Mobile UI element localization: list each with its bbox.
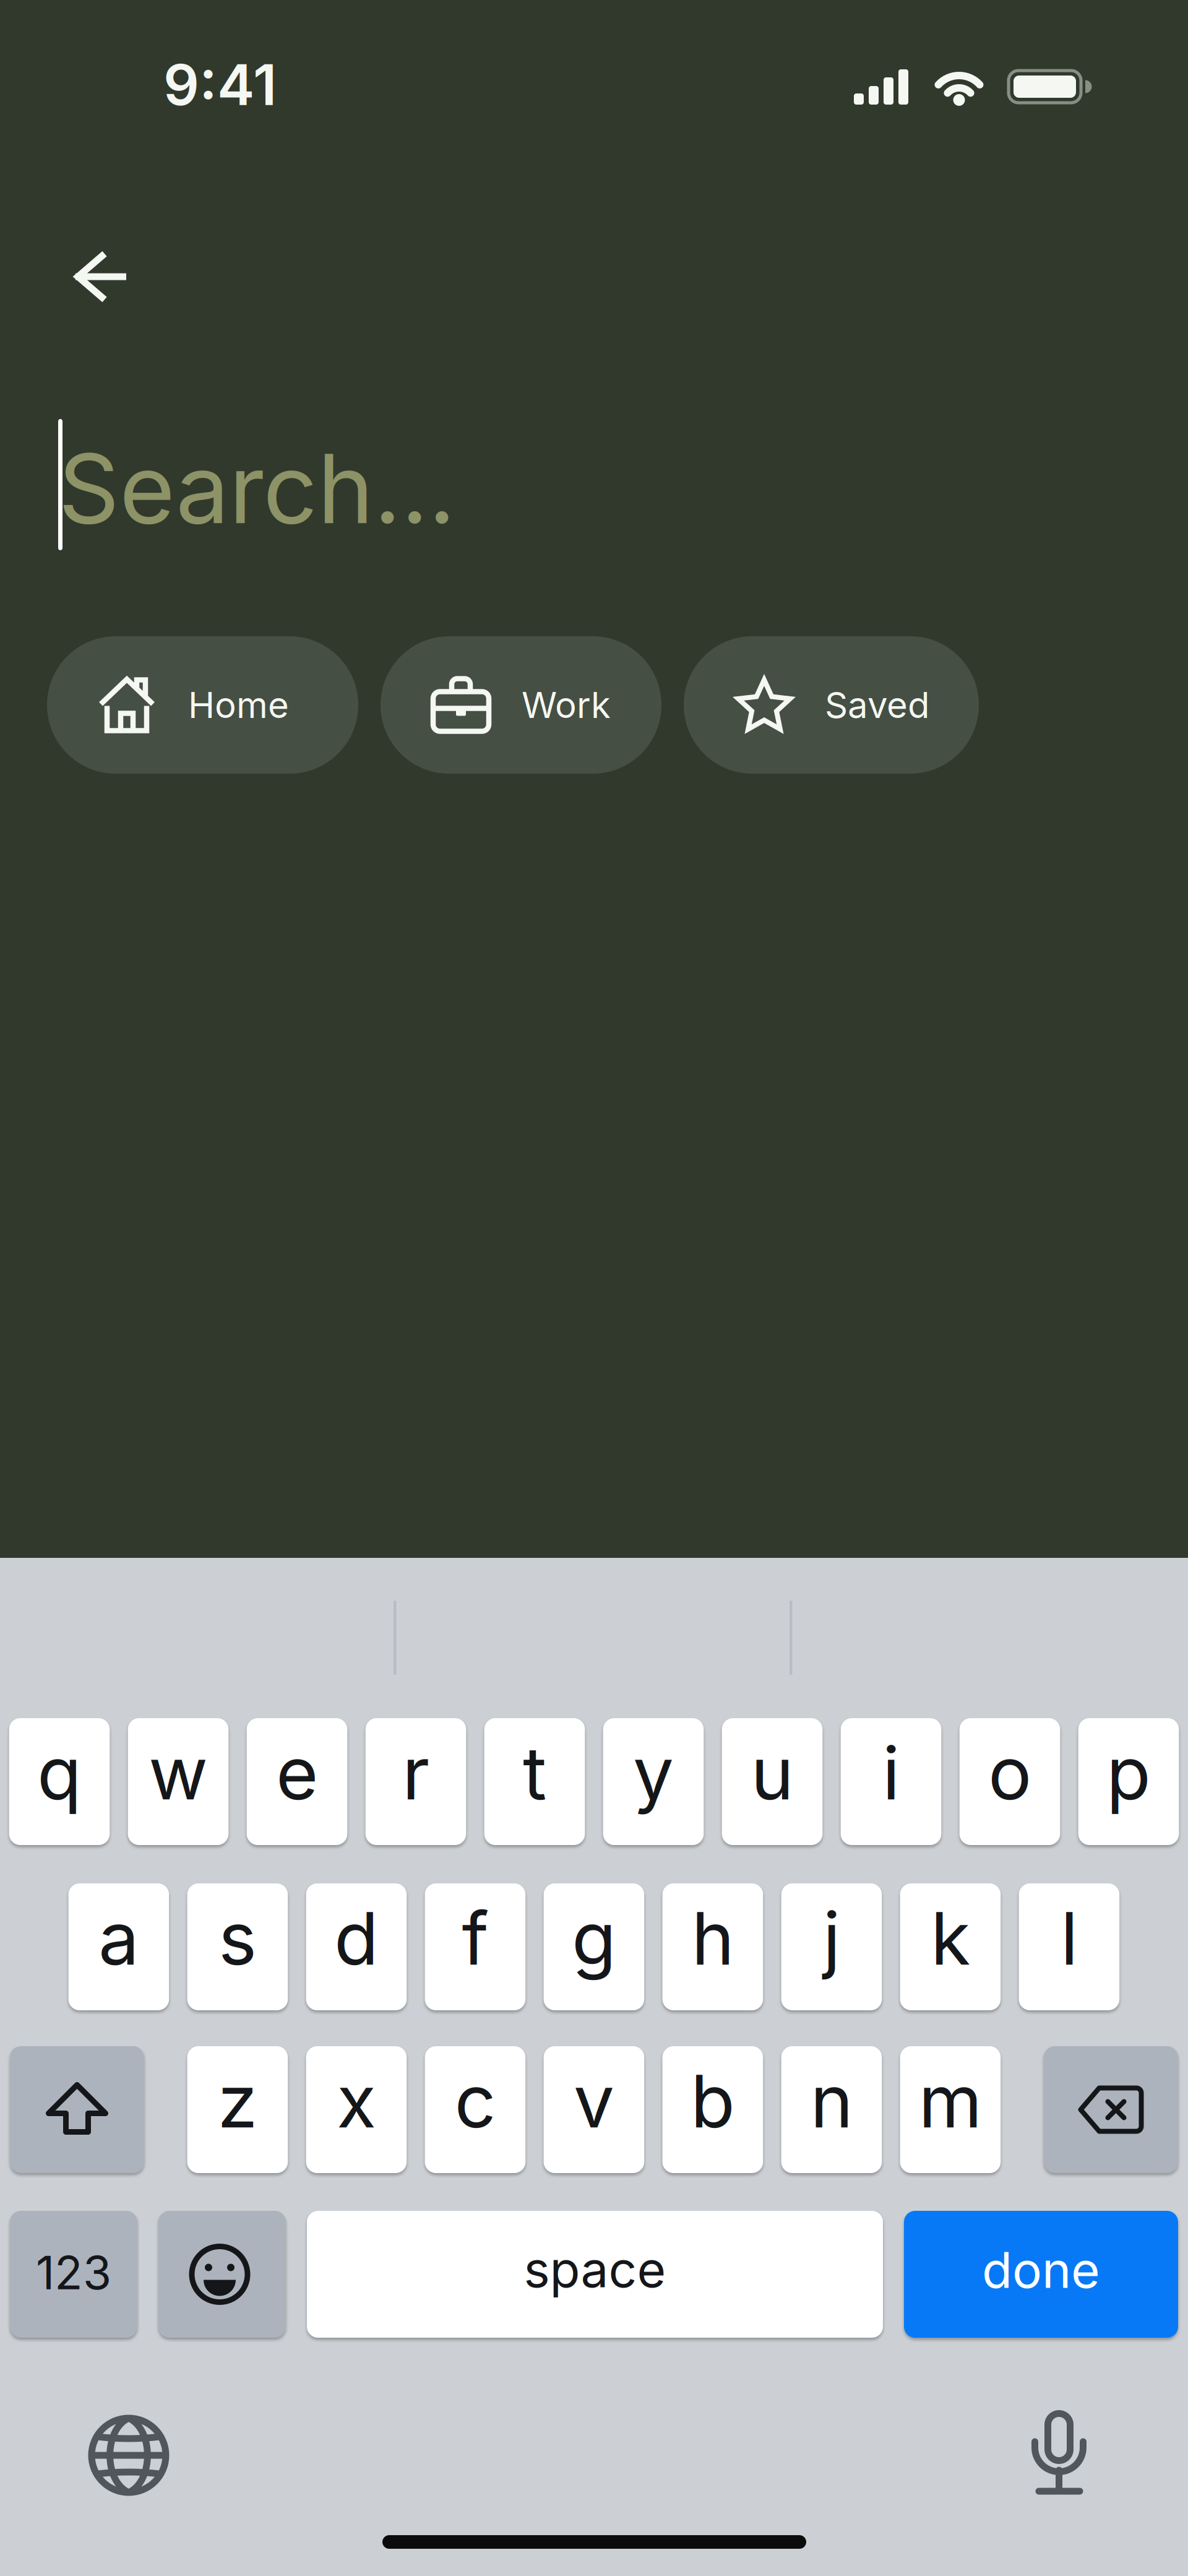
staticText: g xyxy=(572,1894,616,1982)
button[interactable]: e xyxy=(247,1718,347,1845)
button[interactable]: q xyxy=(9,1718,110,1845)
button[interactable]: p xyxy=(1078,1718,1179,1845)
staticText: e xyxy=(276,1729,318,1817)
button[interactable]: v xyxy=(544,2046,644,2173)
staticText: w xyxy=(148,1729,208,1817)
staticText: r xyxy=(402,1729,429,1817)
staticText: 9:41 xyxy=(163,51,277,119)
staticText: h xyxy=(691,1894,734,1982)
button[interactable]: a xyxy=(68,1883,169,2010)
button[interactable]: h xyxy=(662,1883,763,2010)
staticText: t xyxy=(523,1729,546,1817)
button[interactable]: y xyxy=(603,1718,704,1845)
staticText: done xyxy=(982,2240,1100,2300)
button[interactable]: l xyxy=(1019,1883,1119,2010)
button[interactable]: space xyxy=(307,2211,883,2338)
button[interactable]: o xyxy=(959,1718,1060,1845)
button[interactable]: Emoji xyxy=(158,2211,286,2338)
staticText: v xyxy=(574,2057,614,2145)
button[interactable]: c xyxy=(425,2046,525,2173)
button[interactable]: Search xyxy=(58,419,455,550)
staticText: y xyxy=(633,1729,674,1817)
button[interactable]: d xyxy=(306,1883,407,2010)
staticText: 123 xyxy=(36,2244,111,2300)
staticText: f xyxy=(462,1894,488,1982)
button[interactable]: t xyxy=(484,1718,585,1845)
staticText: u xyxy=(751,1729,794,1817)
button[interactable]: Shift xyxy=(10,2046,144,2173)
button[interactable]: x xyxy=(306,2046,407,2173)
staticText: l xyxy=(1060,1894,1078,1982)
staticText: n xyxy=(810,2057,853,2145)
button[interactable]: u xyxy=(722,1718,823,1845)
staticText: Home xyxy=(188,683,289,727)
staticText: d xyxy=(334,1894,379,1982)
staticText: i xyxy=(882,1729,900,1817)
button[interactable]: g xyxy=(544,1883,644,2010)
button[interactable]: Saved xyxy=(684,636,979,774)
staticText: a xyxy=(98,1894,139,1982)
button[interactable]: s xyxy=(187,1883,288,2010)
button[interactable]: done xyxy=(904,2211,1178,2338)
button[interactable]: w xyxy=(128,1718,229,1845)
button[interactable]: f xyxy=(425,1883,525,2010)
staticText: c xyxy=(454,2057,496,2145)
staticText: Search... xyxy=(58,431,455,546)
staticText: space xyxy=(524,2239,666,2299)
button[interactable]: Next keyboard xyxy=(87,2414,170,2497)
button[interactable]: n xyxy=(781,2046,882,2173)
button[interactable]: Delete xyxy=(1044,2046,1178,2173)
staticText: j xyxy=(823,1894,840,1982)
button[interactable]: z xyxy=(187,2046,288,2173)
button[interactable]: k xyxy=(900,1883,1001,2010)
staticText: o xyxy=(988,1729,1031,1817)
button[interactable]: j xyxy=(781,1883,882,2010)
button[interactable]: Dictate xyxy=(1028,2406,1090,2496)
button[interactable]: 123 xyxy=(10,2211,137,2338)
button[interactable]: m xyxy=(900,2046,1001,2173)
button[interactable]: Back xyxy=(73,248,130,305)
button[interactable]: r xyxy=(365,1718,466,1845)
button[interactable]: b xyxy=(662,2046,763,2173)
staticText: q xyxy=(37,1729,82,1817)
staticText: s xyxy=(218,1894,257,1982)
button[interactable]: Home xyxy=(47,636,358,774)
button[interactable]: Work xyxy=(381,636,661,774)
button[interactable]: i xyxy=(841,1718,941,1845)
staticText: k xyxy=(931,1894,970,1982)
staticText: x xyxy=(337,2057,376,2145)
staticText: z xyxy=(217,2057,258,2145)
staticText: p xyxy=(1106,1729,1151,1817)
staticText: m xyxy=(918,2057,982,2145)
staticText: Work xyxy=(522,683,611,727)
staticText: b xyxy=(690,2057,735,2145)
staticText: Saved xyxy=(825,683,930,727)
